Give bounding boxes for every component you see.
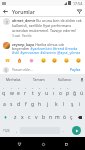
button[interactable]: Paylas [69, 66, 82, 73]
staticText: v [35, 114, 38, 121]
button[interactable]: Filter [74, 6, 84, 16]
button[interactable]: i [76, 98, 84, 111]
button[interactable]: k [52, 98, 60, 111]
button[interactable]: s [8, 98, 15, 111]
staticText: d [17, 101, 21, 108]
button[interactable]: z [11, 111, 19, 124]
staticText: j [47, 101, 49, 108]
staticText: Kullanıcı [58, 77, 72, 82]
staticText: o [59, 90, 63, 97]
button[interactable]: ?123 [0, 124, 13, 137]
button[interactable]: m [54, 111, 61, 124]
button[interactable]: Sparkle heart [28, 57, 34, 63]
staticText: 3 [18, 87, 20, 90]
staticText: 5 [32, 87, 34, 90]
button[interactable]: ç [68, 111, 75, 124]
staticText: ç [70, 114, 73, 121]
staticText: 1 [3, 87, 5, 90]
staticText: 4 [25, 87, 27, 90]
button[interactable]: d [15, 98, 22, 111]
staticText: Yorumlar [12, 8, 35, 15]
button[interactable]: l [60, 98, 68, 111]
staticText: 2 [11, 87, 13, 90]
button[interactable]: Tamam [26, 74, 52, 85]
button[interactable]: f [22, 98, 29, 111]
button[interactable]: c [26, 111, 33, 124]
button[interactable]: 7 [43, 85, 50, 98]
button[interactable]: b [40, 111, 47, 124]
staticText: Paylas [70, 67, 81, 72]
button[interactable]: 2 [8, 85, 15, 98]
staticText: zeynep_kaya Harika olmus cok begendim #y… [12, 42, 82, 55]
staticText: k [55, 101, 58, 108]
button[interactable]: , [13, 124, 20, 137]
button[interactable]: Send [72, 126, 81, 135]
staticText: 17:54 [73, 1, 83, 6]
staticText: u [45, 90, 49, 97]
staticText: p [66, 90, 70, 97]
staticText: 6 [39, 87, 41, 90]
button[interactable]: Voice input [78, 74, 85, 85]
button[interactable]: 8 [50, 85, 57, 98]
button[interactable]: Shift [0, 111, 11, 124]
button[interactable]: Back [0, 6, 10, 16]
button[interactable]: Merhaba [0, 74, 26, 85]
staticText: ı [53, 90, 55, 97]
staticText: , [16, 128, 18, 133]
staticText: l [63, 101, 65, 108]
staticText: Tamam [33, 77, 45, 82]
button[interactable]: Back [14, 139, 24, 149]
staticText: . [63, 128, 65, 133]
staticText: n [49, 114, 53, 121]
staticText: e [17, 90, 20, 97]
staticText: Yorum ekle... [12, 67, 33, 72]
button[interactable]: 3 [15, 85, 22, 98]
button[interactable]: 4 [22, 85, 29, 98]
staticText: b [42, 114, 46, 121]
button[interactable]: Home [38, 139, 48, 149]
button[interactable]: 9 [57, 85, 64, 98]
staticText: q [2, 90, 6, 97]
button[interactable]: g [29, 98, 36, 111]
staticText: ş [71, 101, 74, 108]
staticText: i [79, 101, 81, 108]
button[interactable]: v [33, 111, 40, 124]
button[interactable]: Backspace [75, 111, 85, 124]
button[interactable]: 1 [0, 85, 8, 98]
button[interactable]: 0 [64, 85, 71, 98]
button[interactable]: ü [78, 85, 85, 98]
button[interactable]: 6 [36, 85, 43, 98]
button[interactable]: Kullanıcı [52, 74, 78, 85]
button[interactable]: Laughing face [75, 57, 81, 63]
staticText: z [14, 114, 17, 121]
staticText: 0 [67, 87, 69, 90]
button[interactable]: h [36, 98, 44, 111]
staticText: ahmet_demir Bu urunu ben de aldim cok ku… [12, 18, 82, 33]
staticText: t [32, 90, 34, 97]
button[interactable]: Smiling face [40, 57, 46, 63]
button[interactable]: j [44, 98, 52, 111]
button[interactable]: ş [68, 98, 76, 111]
button[interactable]: Grinning face [51, 57, 57, 63]
staticText: m [55, 114, 60, 121]
button[interactable]: a [1, 98, 8, 111]
staticText: a [3, 101, 6, 108]
button[interactable]: 5 [29, 85, 36, 98]
staticText: 9 [60, 87, 62, 90]
button[interactable]: Recents [61, 139, 71, 149]
staticText: ö [63, 114, 67, 121]
button[interactable]: n [47, 111, 54, 124]
button[interactable]: ö [61, 111, 68, 124]
button[interactable]: Raised hands [4, 57, 10, 63]
staticText: Merhaba [6, 77, 21, 82]
button[interactable]: x [19, 111, 26, 124]
staticText: 8 [53, 87, 55, 90]
staticText: ü [80, 90, 84, 97]
button[interactable]: ğ [71, 85, 78, 98]
button[interactable]: Fire [16, 57, 22, 63]
button[interactable]: Happy face [63, 57, 69, 63]
staticText: s [10, 101, 13, 108]
staticText: ğ [73, 90, 77, 97]
